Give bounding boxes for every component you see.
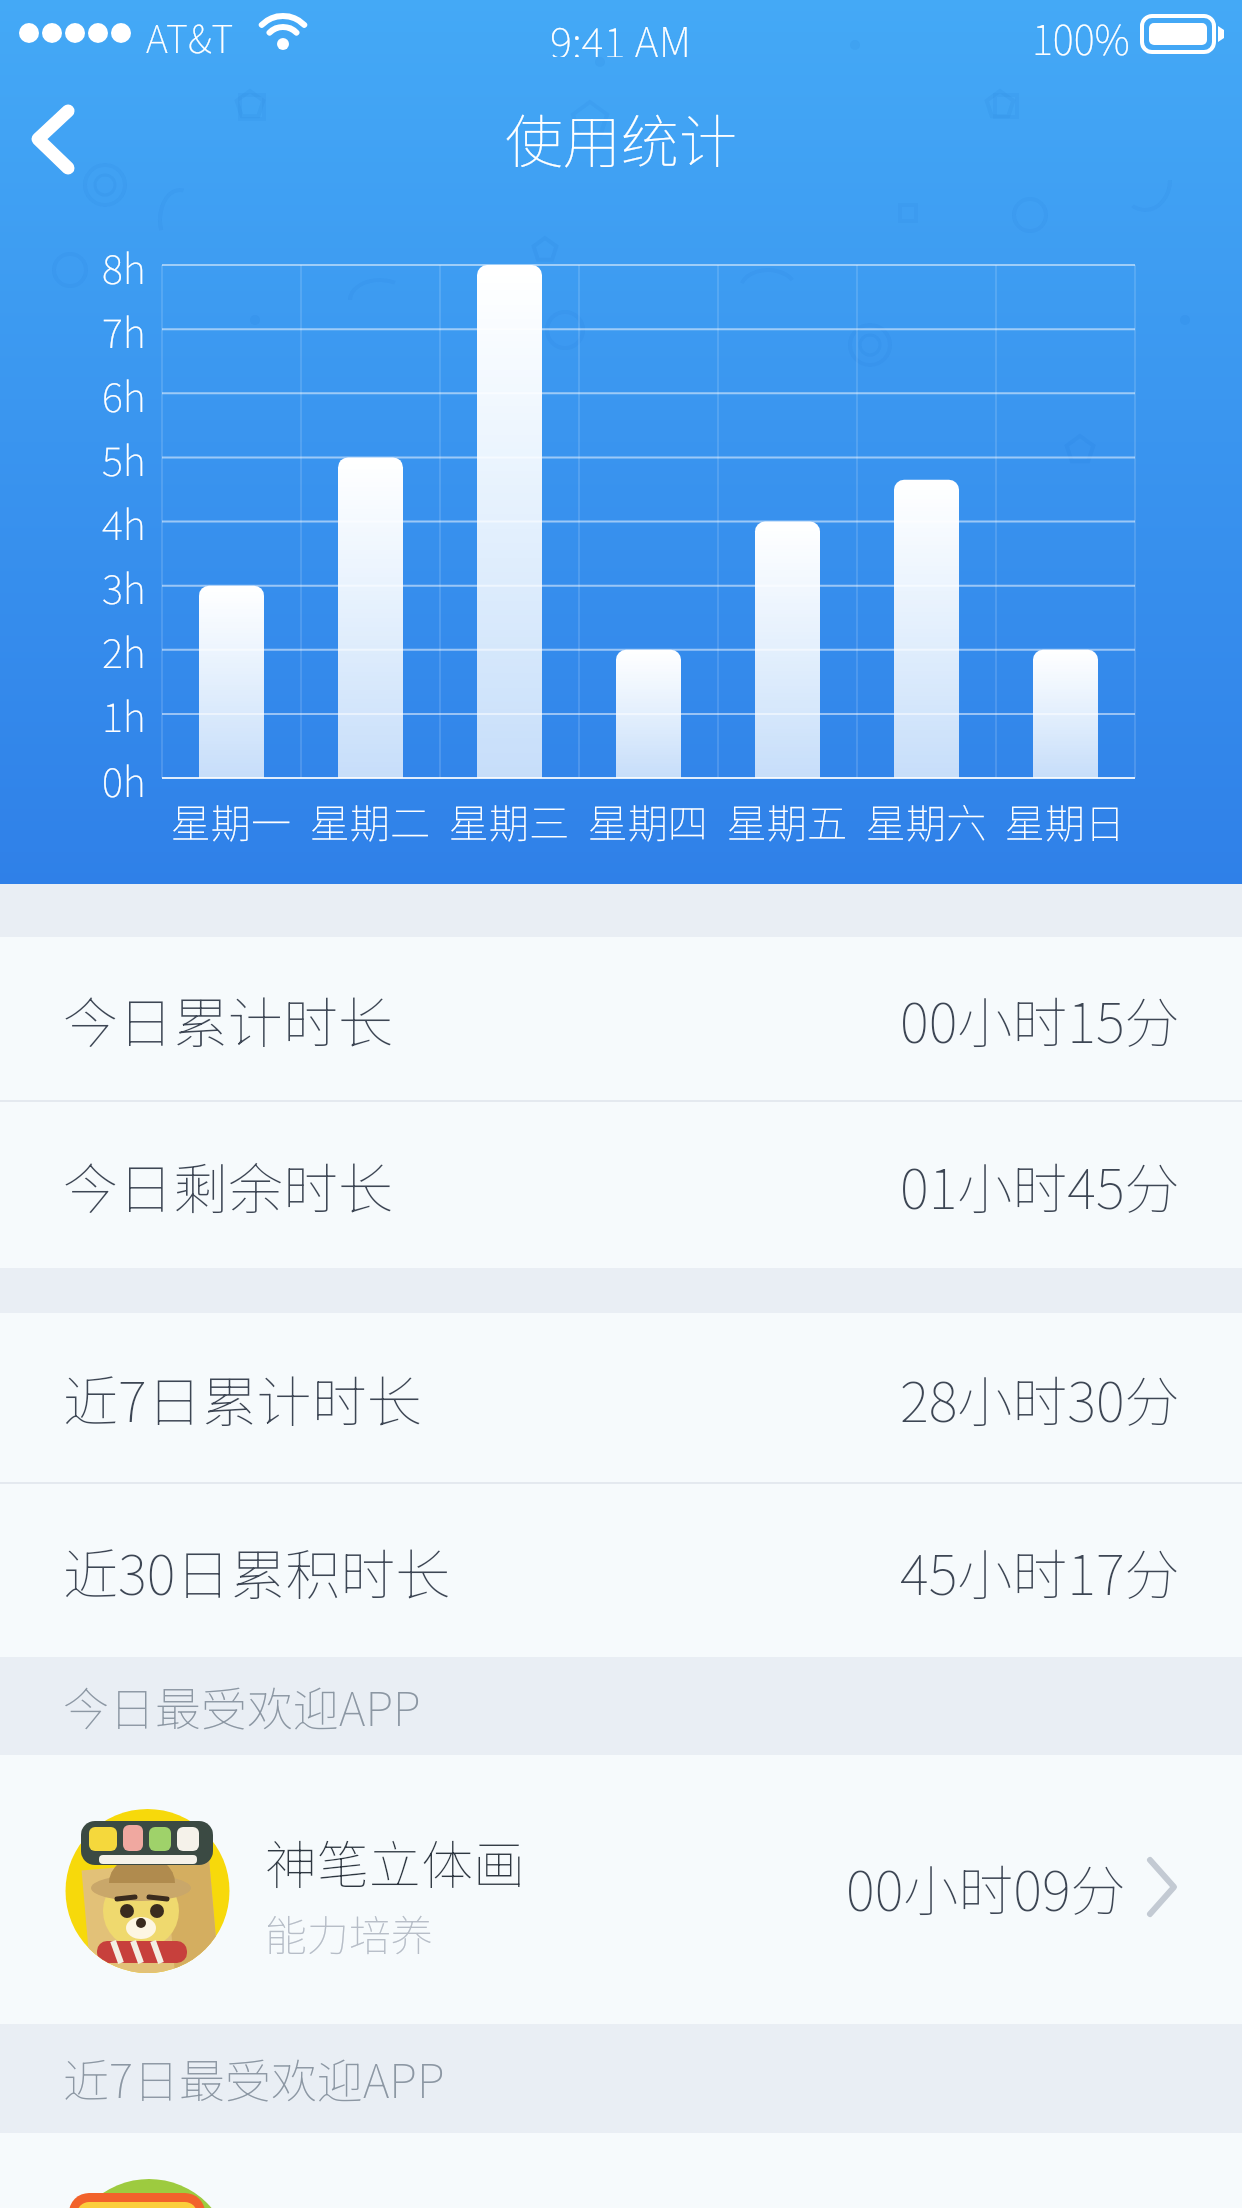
button[interactable]: 近7日累计时长 bbox=[0, 1313, 1242, 1482]
staticText: 100% bbox=[1032, 9, 1130, 57]
staticText: 星期日 bbox=[1005, 792, 1125, 850]
staticText: 0h bbox=[102, 751, 146, 805]
staticText: 3h bbox=[102, 558, 146, 612]
staticText: 5h bbox=[102, 430, 146, 484]
staticText: 星期一 bbox=[171, 792, 291, 850]
staticText: AT&T bbox=[146, 9, 234, 57]
staticText: 2h bbox=[102, 622, 146, 676]
staticText: 近7日最受欢迎APP bbox=[63, 2045, 445, 2112]
button[interactable]: 今日剩余时长 bbox=[0, 1102, 1242, 1268]
staticText: 7h bbox=[102, 302, 146, 356]
staticText: 近30日累积时长 bbox=[63, 1531, 451, 1611]
staticText: 01小时45分 bbox=[900, 1145, 1180, 1225]
staticText: 1h bbox=[102, 686, 146, 740]
staticText: 星期二 bbox=[310, 792, 430, 850]
staticText: 使用统计 bbox=[505, 96, 738, 180]
staticText: 星期四 bbox=[588, 792, 708, 850]
staticText: 星期三 bbox=[449, 792, 569, 850]
staticText: 00小时09分 bbox=[846, 1847, 1126, 1927]
button[interactable] bbox=[14, 90, 114, 186]
staticText: 今日最受欢迎APP bbox=[63, 1673, 421, 1740]
staticText: 今日剩余时长 bbox=[63, 1145, 394, 1225]
staticText: 今日累计时长 bbox=[63, 979, 394, 1059]
staticText: 近7日累计时长 bbox=[63, 1358, 422, 1438]
button[interactable]: 近30日累积时长 bbox=[0, 1484, 1242, 1657]
staticText: 4h bbox=[102, 494, 146, 548]
staticText: 45小时17分 bbox=[900, 1531, 1180, 1611]
staticText: 28小时30分 bbox=[900, 1358, 1180, 1438]
button[interactable]: 今日累计时长 bbox=[0, 937, 1242, 1100]
button[interactable] bbox=[0, 2133, 1242, 2208]
staticText: 星期五 bbox=[727, 792, 847, 850]
staticText: 00小时15分 bbox=[900, 979, 1180, 1059]
staticText: 能力培养 bbox=[265, 1902, 434, 1963]
staticText: 6h bbox=[102, 366, 146, 420]
staticText: 星期六 bbox=[866, 792, 986, 850]
staticText: 神笔立体画 bbox=[265, 1824, 526, 1896]
button[interactable]: 神笔立体画 bbox=[0, 1755, 1242, 2024]
staticText: 9:41 AM bbox=[550, 9, 692, 57]
staticText: 8h bbox=[102, 238, 146, 292]
